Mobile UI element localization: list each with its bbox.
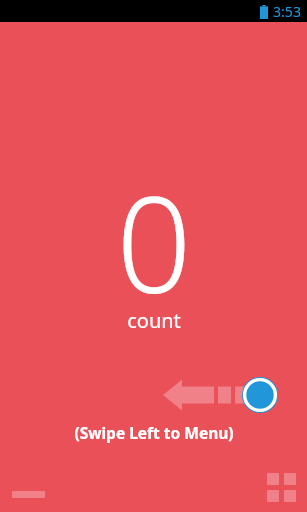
staticText: 0	[116, 152, 192, 332]
button[interactable]: Swipe left to open menu	[160, 375, 280, 415]
staticText: (Swipe Left to Menu)	[74, 422, 234, 443]
button[interactable]: Back	[6, 483, 50, 505]
button[interactable]: Recent apps	[261, 466, 301, 508]
staticText: 3:53	[273, 2, 301, 21]
staticText: count	[127, 307, 181, 334]
